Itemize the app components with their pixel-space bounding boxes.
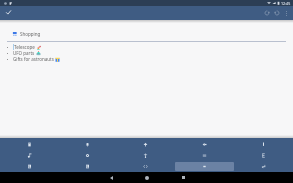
- button[interactable]: Key 3: [175, 139, 234, 149]
- button[interactable]: Key 14: [234, 162, 293, 171]
- button[interactable]: Key 5: [0, 151, 58, 160]
- staticText: UFO parts: [13, 50, 35, 56]
- staticText: 12:45: [281, 1, 291, 6]
- button[interactable]: Key 12: [116, 162, 175, 171]
- staticText: Shopping: [20, 31, 41, 37]
- button[interactable]: Key 11: [58, 162, 116, 171]
- button[interactable]: Key 8: [175, 151, 234, 160]
- button[interactable]: Key 7: [116, 151, 175, 160]
- button[interactable]: Back: [93, 172, 129, 183]
- button[interactable]: Recents: [165, 172, 201, 183]
- button[interactable]: Home: [129, 172, 165, 183]
- button[interactable]: Done: [3, 8, 14, 19]
- button[interactable]: Key 13: [175, 162, 234, 171]
- button[interactable]: Key 6: [58, 151, 116, 160]
- button[interactable]: Redo: [272, 8, 282, 18]
- button[interactable]: Undo: [262, 8, 272, 18]
- button[interactable]: Key 10: [0, 162, 58, 171]
- button[interactable]: Key 9: [234, 151, 293, 160]
- button[interactable]: More options: [282, 9, 291, 18]
- staticText: Telescope: [14, 44, 35, 50]
- staticText: Gifts for astronauts: [13, 56, 54, 62]
- button[interactable]: Key 2: [116, 139, 175, 149]
- button[interactable]: Key 1: [58, 139, 116, 149]
- button[interactable]: Key 0: [0, 139, 58, 149]
- button[interactable]: Key 4: [234, 139, 293, 149]
